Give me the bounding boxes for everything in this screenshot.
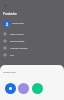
button[interactable]: Purple theme	[18, 83, 29, 94]
button[interactable]: Blue theme	[5, 83, 16, 94]
staticText: Odaberi temu	[3, 71, 17, 74]
staticText: Mreza i internet	[10, 33, 24, 35]
staticText: Aplikacije i obavijesti	[10, 47, 28, 49]
staticText: Zvuk	[10, 54, 15, 56]
button[interactable]: Green theme	[32, 83, 43, 94]
button[interactable]: Google racun	[0, 19, 64, 28]
staticText: Google racun	[12, 22, 24, 25]
button[interactable]: Zvuk	[0, 51, 64, 58]
button[interactable]: Aplikacije i obavijesti	[0, 44, 64, 51]
staticText: Povezani uredjaji	[10, 40, 25, 42]
button[interactable]: Povezani uredjaji	[0, 37, 64, 44]
button[interactable]: Back	[1, 1, 10, 10]
staticText: Postavke	[3, 11, 17, 16]
button[interactable]: Mreza i internet	[0, 30, 64, 37]
